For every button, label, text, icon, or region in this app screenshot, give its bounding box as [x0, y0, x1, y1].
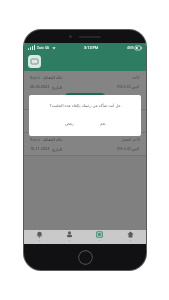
button[interactable]: Menu — [28, 55, 41, 68]
button[interactable]: Notifications — [24, 230, 54, 244]
button[interactable]: Home — [115, 230, 146, 244]
button[interactable]: Sessions — [84, 230, 115, 244]
button[interactable]: رفض — [59, 119, 80, 128]
button[interactable]: Reject — [24, 110, 146, 132]
staticText: ···· — [38, 239, 41, 243]
staticText: Reject — [30, 137, 41, 142]
staticText: الأحد المقبل — [121, 137, 140, 142]
staticText: التاريخ — [52, 85, 62, 89]
staticText: نعم — [100, 121, 106, 126]
staticText: PM 4:03 اليوم — [117, 84, 140, 89]
staticText: هل أنت متأكد من رغبتك بإلغاء هذه الجلسة؟ — [36, 103, 134, 108]
staticText: رفض — [65, 121, 74, 126]
staticText: التاريخ — [52, 147, 62, 151]
staticText: 3:13 PM — [84, 45, 99, 50]
staticText: 26-03-2023 — [30, 84, 50, 89]
staticText: 46% — [127, 45, 134, 50]
staticText: ···· — [129, 239, 132, 243]
staticText: 16-11-2023 — [30, 146, 50, 151]
staticText: PM 4:40 اليوم — [117, 146, 140, 151]
staticText: حالة المقابلة — [43, 137, 63, 142]
staticText: حالة المقابلة — [43, 75, 63, 80]
staticText: ···· — [68, 239, 71, 243]
button[interactable]: نعم — [94, 119, 112, 128]
button[interactable]: Profile — [54, 230, 84, 244]
staticText: الأحد — [132, 75, 140, 79]
button[interactable]: Reject — [24, 71, 146, 109]
staticText: Zain SA — [37, 45, 50, 50]
button[interactable]: إلغاء الحجز — [64, 93, 106, 103]
staticText: ···· — [98, 239, 101, 243]
staticText: Reject — [30, 75, 41, 80]
button[interactable]: Reject — [24, 133, 146, 155]
